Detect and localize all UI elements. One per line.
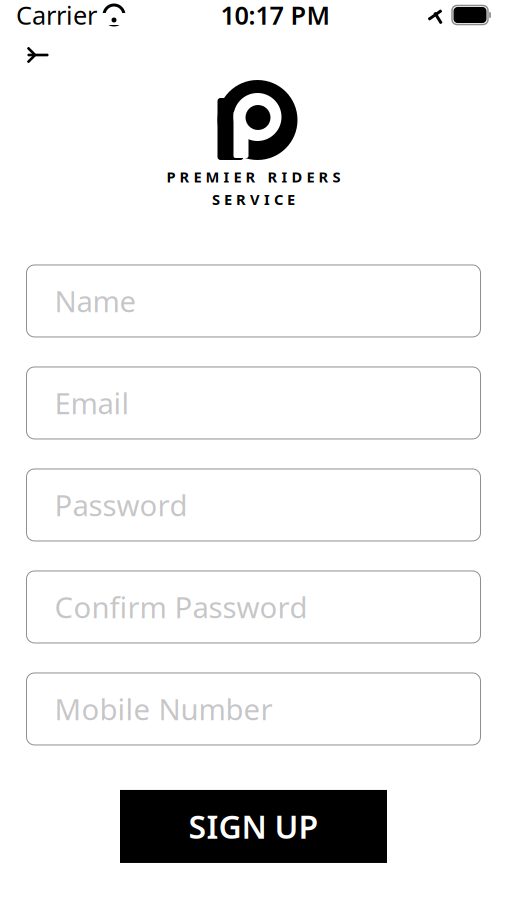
button[interactable]: Mobile Number <box>26 673 480 745</box>
button[interactable]: Email <box>26 367 480 439</box>
staticText: S E R V I C E <box>212 189 295 209</box>
staticText: P R E M I E R R I D E R S <box>166 167 340 186</box>
staticText: Mobile Number <box>54 689 272 728</box>
staticText: Email <box>54 383 129 422</box>
button[interactable]: Name <box>26 265 480 337</box>
staticText: Carrier <box>16 0 97 32</box>
button[interactable]: Back <box>16 33 60 77</box>
button[interactable]: SIGN UP <box>120 790 387 863</box>
button[interactable]: Password <box>26 469 480 541</box>
staticText: 10:17 PM <box>220 0 330 32</box>
staticText: Confirm Password <box>54 587 307 626</box>
button[interactable]: Confirm Password <box>26 571 480 643</box>
staticText: Name <box>54 281 136 320</box>
staticText: SIGN UP <box>188 805 318 848</box>
staticText: Password <box>54 485 187 524</box>
